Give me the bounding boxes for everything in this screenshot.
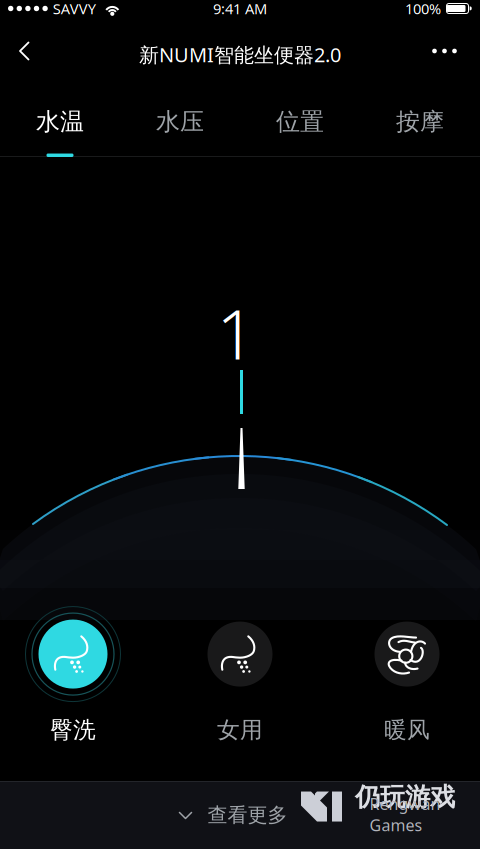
- staticText: 女用: [217, 716, 263, 744]
- staticText: 臀洗: [50, 716, 96, 744]
- staticText: 位置: [276, 107, 324, 136]
- button[interactable]: 臀洗: [8, 604, 138, 744]
- staticText: 9:41 AM: [213, 0, 267, 18]
- staticText: 暖风: [384, 716, 430, 744]
- button[interactable]: 女用: [175, 604, 305, 744]
- button[interactable]: 水压: [120, 81, 240, 157]
- staticText: 按摩: [396, 107, 444, 136]
- staticText: 100%: [405, 0, 441, 18]
- button[interactable]: 位置: [240, 81, 360, 157]
- staticText: SAVVY: [53, 0, 96, 18]
- staticText: 水压: [156, 107, 204, 136]
- button[interactable]: 更多选项: [416, 26, 480, 76]
- staticText: 查看更多: [207, 803, 287, 827]
- button[interactable]: 水温: [0, 81, 120, 157]
- button[interactable]: 按摩: [360, 81, 480, 157]
- staticText: 1: [216, 288, 255, 378]
- staticText: 新NUMI智能坐便器2.0: [139, 41, 341, 68]
- button[interactable]: 暖风: [342, 604, 472, 744]
- button[interactable]: 返回: [0, 26, 54, 76]
- staticText: 仍玩游戏: [355, 781, 455, 812]
- button[interactable]: 查看更多: [164, 791, 301, 839]
- staticText: 水温: [36, 107, 84, 136]
- staticText: Rengwan Games: [369, 793, 440, 836]
